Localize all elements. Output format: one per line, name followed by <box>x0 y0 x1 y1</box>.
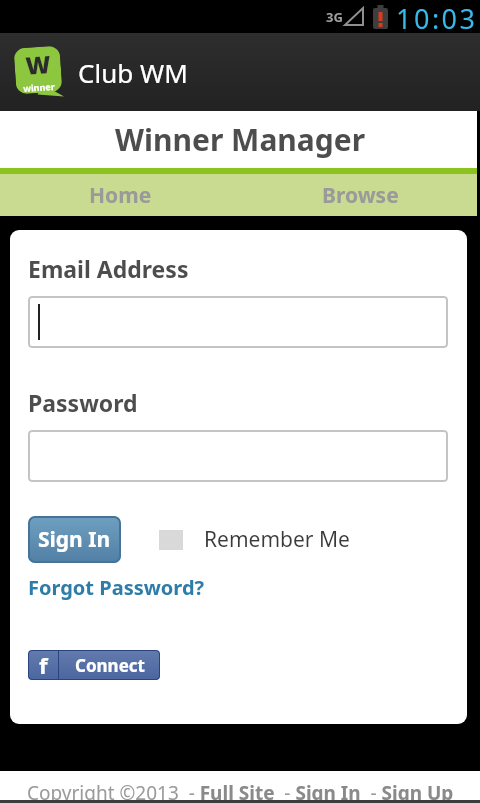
staticText: Password <box>28 387 138 418</box>
staticText: Sign In <box>38 525 111 554</box>
staticText: W <box>24 47 52 82</box>
staticText: f <box>39 650 48 680</box>
staticText: winner <box>23 80 56 94</box>
staticText: Winner Manager <box>115 119 366 160</box>
staticText: 3G <box>326 8 343 26</box>
staticText: Club WM <box>78 55 188 90</box>
staticText: Home <box>89 181 152 210</box>
staticText: Forgot Password? <box>28 574 205 601</box>
staticText: Email Address <box>28 253 189 284</box>
staticText: Connect <box>75 654 145 677</box>
staticText: Browse <box>322 181 399 210</box>
staticText: 10:03 <box>396 0 478 33</box>
staticText: Remember Me <box>204 525 350 554</box>
staticText: Copyright ©2013 - Full Site - Sign In - … <box>27 780 454 803</box>
